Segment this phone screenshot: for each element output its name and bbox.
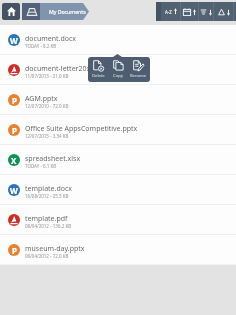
button[interactable]: Sort by date xyxy=(181,2,198,21)
button[interactable]: Home xyxy=(2,3,20,20)
button[interactable]: W xyxy=(0,25,236,55)
staticText: P xyxy=(12,95,17,106)
staticText: A-Z xyxy=(165,9,172,15)
button[interactable]: Sort by size xyxy=(199,2,213,21)
staticText: P xyxy=(12,245,17,256)
staticText: 12/07/2015 - 3.34 KB xyxy=(25,133,69,139)
button[interactable]: W xyxy=(0,175,236,205)
staticText: X xyxy=(11,155,17,166)
button[interactable]: Sort by name xyxy=(161,2,180,21)
staticText: museum-day.pptx xyxy=(25,244,85,254)
button[interactable]: P xyxy=(0,235,236,265)
staticText: Office Suite AppsCompetitive.pptx xyxy=(25,124,138,134)
staticText: My Documents xyxy=(49,8,86,15)
staticText: TODAY - 6.1 KB xyxy=(25,163,57,169)
staticText: document-letter20xx.docx xyxy=(25,64,112,74)
button[interactable]: Rename xyxy=(128,57,148,82)
staticText: TODAY - 8.2 KB xyxy=(25,43,57,49)
staticText: P xyxy=(12,125,17,136)
staticText: document.docx xyxy=(25,34,77,44)
button[interactable]: Delete xyxy=(88,57,108,82)
button[interactable]: P xyxy=(0,85,236,115)
staticText: Rename xyxy=(130,73,147,79)
button[interactable]: P xyxy=(0,115,236,145)
staticText: 11/07/2013 - 21.0 KB xyxy=(25,73,69,79)
button[interactable]: X xyxy=(0,145,236,175)
staticText: 08/04/2012 - 136.2 KB xyxy=(25,223,72,229)
button[interactable]: Copy xyxy=(108,57,128,82)
staticText: template.pdf xyxy=(25,214,68,224)
button[interactable]: document-letter20xx.docx xyxy=(0,55,236,85)
button[interactable] xyxy=(40,3,89,20)
staticText: 16/08/2012 - 25.5 KB xyxy=(25,193,69,199)
staticText: Copy xyxy=(113,73,123,79)
staticText: W xyxy=(10,185,18,196)
staticText: W xyxy=(10,35,18,46)
staticText: 08/04/2012 - 72.0 KB xyxy=(25,253,69,259)
staticText: 12/07/2010 - 72.0 KB xyxy=(25,103,69,109)
button[interactable]: Storage xyxy=(22,3,46,20)
staticText: spreadsheet.xlsx xyxy=(25,154,81,164)
staticText: Delete xyxy=(92,73,105,79)
staticText: template.docx xyxy=(25,184,73,194)
button[interactable]: Sort by type xyxy=(214,2,233,21)
button[interactable]: template.pdf xyxy=(0,205,236,235)
staticText: AGM.pptx xyxy=(25,94,58,104)
